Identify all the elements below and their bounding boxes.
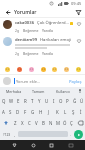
staticText: deniiizm99 bbox=[15, 37, 38, 43]
staticText: O bbox=[59, 98, 63, 104]
button[interactable]: Y bbox=[36, 95, 43, 106]
button[interactable]: O bbox=[57, 95, 64, 106]
button[interactable]: . bbox=[68, 128, 74, 140]
staticText: 2g bbox=[15, 28, 20, 33]
button[interactable]: Emoji bbox=[39, 65, 47, 73]
button[interactable]: Back bbox=[3, 8, 11, 16]
button[interactable]: , bbox=[12, 128, 18, 140]
staticText: J bbox=[48, 109, 50, 115]
staticText: N bbox=[49, 120, 53, 126]
button[interactable]: J bbox=[45, 106, 53, 117]
staticText: C bbox=[28, 120, 31, 126]
staticText: . bbox=[70, 132, 72, 137]
button[interactable]: Backspace bbox=[75, 117, 85, 128]
staticText: Z bbox=[14, 120, 17, 126]
button[interactable]: E bbox=[15, 95, 22, 106]
staticText: , bbox=[14, 132, 16, 137]
button[interactable]: K bbox=[53, 106, 61, 117]
button[interactable]: G bbox=[29, 106, 37, 117]
staticText: Ğ bbox=[73, 98, 77, 104]
staticText: 2g bbox=[15, 51, 20, 56]
button[interactable]: Keyboard bbox=[66, 141, 75, 150]
staticText: Q bbox=[2, 98, 6, 104]
staticText: E bbox=[17, 98, 20, 104]
staticText: M bbox=[56, 120, 60, 126]
button[interactable]: Ç bbox=[68, 117, 75, 128]
button[interactable]: Voice input bbox=[76, 87, 83, 95]
button[interactable]: Q bbox=[0, 95, 8, 106]
button[interactable]: Merhaba bbox=[2, 87, 26, 95]
button[interactable]: Home bbox=[29, 141, 38, 150]
button[interactable]: N bbox=[47, 117, 54, 128]
button[interactable]: D bbox=[14, 106, 21, 117]
staticText: Tamam bbox=[32, 89, 45, 94]
staticText: Kullanıcı bbox=[56, 89, 71, 94]
button[interactable]: Z bbox=[11, 117, 19, 128]
staticText: İ bbox=[80, 109, 82, 115]
button[interactable]: Emoji bbox=[62, 65, 70, 73]
staticText: ?123 bbox=[3, 132, 11, 137]
button[interactable]: Emoji bbox=[27, 65, 35, 73]
button[interactable]: P bbox=[64, 95, 71, 106]
staticText: 09:45 bbox=[71, 1, 82, 6]
button[interactable]: F bbox=[21, 106, 29, 117]
staticText: B bbox=[42, 120, 45, 126]
button[interactable]: İ bbox=[77, 106, 85, 117]
button[interactable]: Like bbox=[75, 37, 82, 44]
button[interactable]: Yanıtla bbox=[42, 51, 53, 56]
button[interactable]: W bbox=[8, 95, 15, 106]
staticText: Ş bbox=[72, 109, 75, 115]
staticText: W bbox=[9, 98, 14, 104]
staticText: Y bbox=[38, 98, 41, 104]
button[interactable]: Ğ bbox=[71, 95, 78, 106]
staticText: Ü bbox=[80, 98, 84, 104]
staticText: Ç bbox=[70, 120, 73, 126]
button[interactable]: Tamam bbox=[26, 87, 51, 95]
button[interactable]: Beğenme bbox=[23, 51, 39, 56]
button[interactable]: Emoji bbox=[3, 65, 11, 73]
button[interactable]: B bbox=[40, 117, 47, 128]
button[interactable]: Yanıtla bbox=[42, 28, 53, 33]
staticText: U bbox=[45, 98, 49, 104]
button[interactable]: Shift bbox=[0, 117, 11, 128]
button[interactable]: A bbox=[0, 106, 7, 117]
staticText: A bbox=[2, 109, 5, 115]
button[interactable]: Filter bbox=[74, 8, 82, 16]
button[interactable]: I bbox=[50, 95, 57, 106]
staticText: P bbox=[66, 98, 69, 104]
button[interactable]: Recents bbox=[47, 141, 56, 150]
staticText: S bbox=[9, 109, 12, 115]
button[interactable]: X bbox=[19, 117, 26, 128]
button[interactable]: S bbox=[7, 106, 14, 117]
button[interactable]: Paylaş bbox=[69, 79, 82, 84]
button[interactable]: Like bbox=[75, 20, 82, 27]
button[interactable]: L bbox=[61, 106, 69, 117]
button[interactable]: ?123 bbox=[1, 128, 12, 140]
button[interactable]: H bbox=[37, 106, 45, 117]
button[interactable]: caka0036 bbox=[0, 18, 85, 35]
button[interactable]: C bbox=[26, 117, 33, 128]
button[interactable]: deniiizm99 bbox=[0, 35, 85, 58]
staticText: Çok Öğrenlerdirsen bbox=[37, 20, 69, 26]
button[interactable]: U bbox=[43, 95, 50, 106]
button[interactable]: Ü bbox=[78, 95, 85, 106]
button[interactable]: Back bbox=[10, 141, 19, 150]
staticText: Ö bbox=[63, 120, 67, 126]
button[interactable]: V bbox=[33, 117, 40, 128]
button[interactable]: T bbox=[29, 95, 36, 106]
staticText: Yorumlar bbox=[14, 9, 37, 16]
button[interactable]: M bbox=[54, 117, 61, 128]
button[interactable]: Kullanıcı bbox=[51, 87, 76, 95]
button[interactable]: Emoji bbox=[74, 65, 82, 73]
button[interactable]: Emoji bbox=[15, 65, 23, 73]
button[interactable]: Emoji bbox=[50, 65, 58, 73]
button[interactable]: Beğenme bbox=[23, 28, 39, 33]
staticText: D bbox=[16, 109, 20, 115]
staticText: V bbox=[35, 120, 38, 126]
button[interactable]: Send bbox=[74, 130, 83, 139]
button[interactable]: R bbox=[22, 95, 29, 106]
staticText: Yorum ekle... bbox=[16, 79, 69, 84]
button[interactable]: Ö bbox=[61, 117, 68, 128]
button[interactable]: Ş bbox=[69, 106, 77, 117]
